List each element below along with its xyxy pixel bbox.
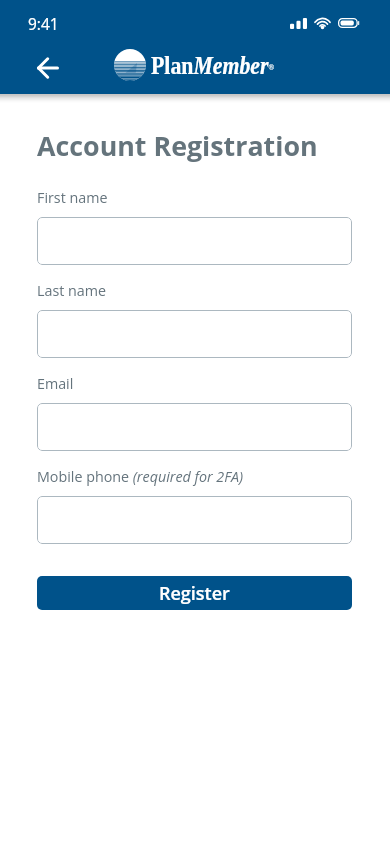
- staticText: Mobile phone (required for 2FA): [37, 467, 244, 486]
- staticText: Register: [159, 581, 230, 606]
- staticText: PlanMember®: [151, 51, 275, 79]
- staticText: First name: [37, 188, 108, 207]
- button[interactable]: [37, 403, 352, 451]
- button[interactable]: Back: [24, 44, 70, 90]
- button[interactable]: [37, 217, 352, 265]
- staticText: Email: [37, 374, 74, 393]
- staticText: Last name: [37, 281, 107, 300]
- staticText: 9:41: [28, 13, 59, 34]
- staticText: Account Registration: [37, 127, 318, 163]
- button[interactable]: [37, 496, 352, 544]
- button[interactable]: [37, 310, 352, 358]
- button[interactable]: Register: [37, 576, 352, 610]
